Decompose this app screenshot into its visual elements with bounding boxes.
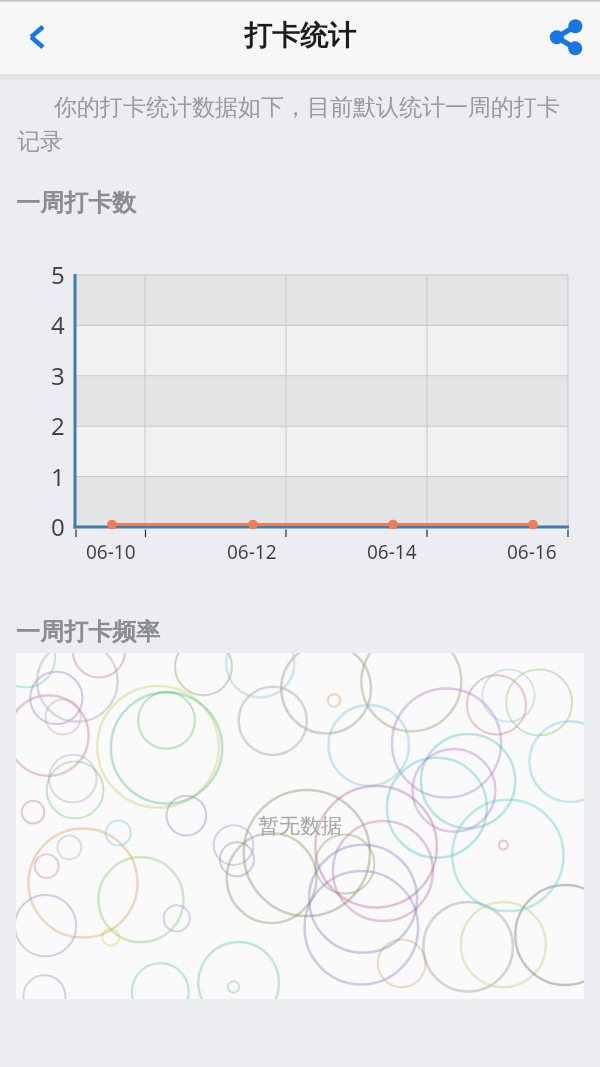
staticText: 一周打卡数 <box>16 188 136 218</box>
staticText: 06-12 <box>227 539 277 565</box>
staticText: 记录 <box>17 127 63 156</box>
staticText: 0 <box>51 510 65 543</box>
staticText: 4 <box>51 308 65 341</box>
staticText: 一周打卡频率 <box>16 617 160 647</box>
button[interactable]: Back <box>9 9 65 65</box>
staticText: 你的打卡统计数据如下，目前默认统计一周的打卡 <box>54 93 560 122</box>
staticText: 暂无数据 <box>258 813 342 839</box>
button[interactable]: Share <box>538 9 594 65</box>
staticText: 06-10 <box>86 539 136 565</box>
staticText: 5 <box>51 258 65 291</box>
staticText: 06-16 <box>507 539 557 565</box>
staticText: 3 <box>51 359 65 392</box>
staticText: 1 <box>51 460 65 493</box>
staticText: 06-14 <box>367 539 417 565</box>
staticText: 打卡统计 <box>244 18 356 53</box>
staticText: 2 <box>51 409 65 442</box>
